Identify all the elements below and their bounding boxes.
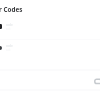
staticText: code [6, 23, 13, 27]
button[interactable]: Scan code [94, 78, 100, 85]
button[interactable]: code [0, 40, 100, 55]
button[interactable]: code [0, 19, 100, 34]
staticText: r Codes [0, 5, 23, 14]
staticText: code [6, 44, 13, 48]
